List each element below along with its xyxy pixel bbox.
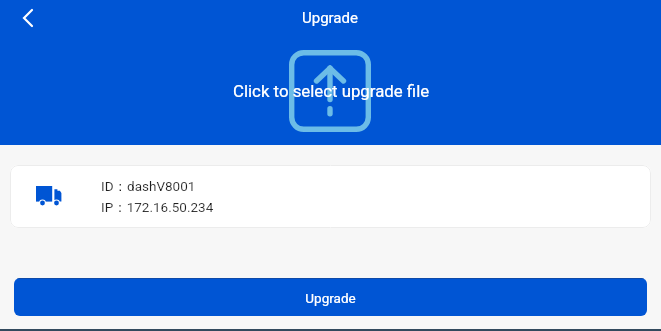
button[interactable]: Upgrade	[14, 278, 647, 316]
staticText: Upgrade	[302, 9, 358, 27]
staticText: Upgrade	[305, 290, 356, 306]
staticText: Click to select upgrade file	[233, 81, 430, 101]
button[interactable]: Back	[10, 0, 46, 36]
button[interactable]: Select upgrade file	[289, 50, 371, 132]
staticText: ID：dashV8001	[101, 178, 196, 195]
staticText: IP：172.16.50.234	[101, 199, 214, 216]
button[interactable]: ID：dashV8001	[10, 165, 651, 228]
